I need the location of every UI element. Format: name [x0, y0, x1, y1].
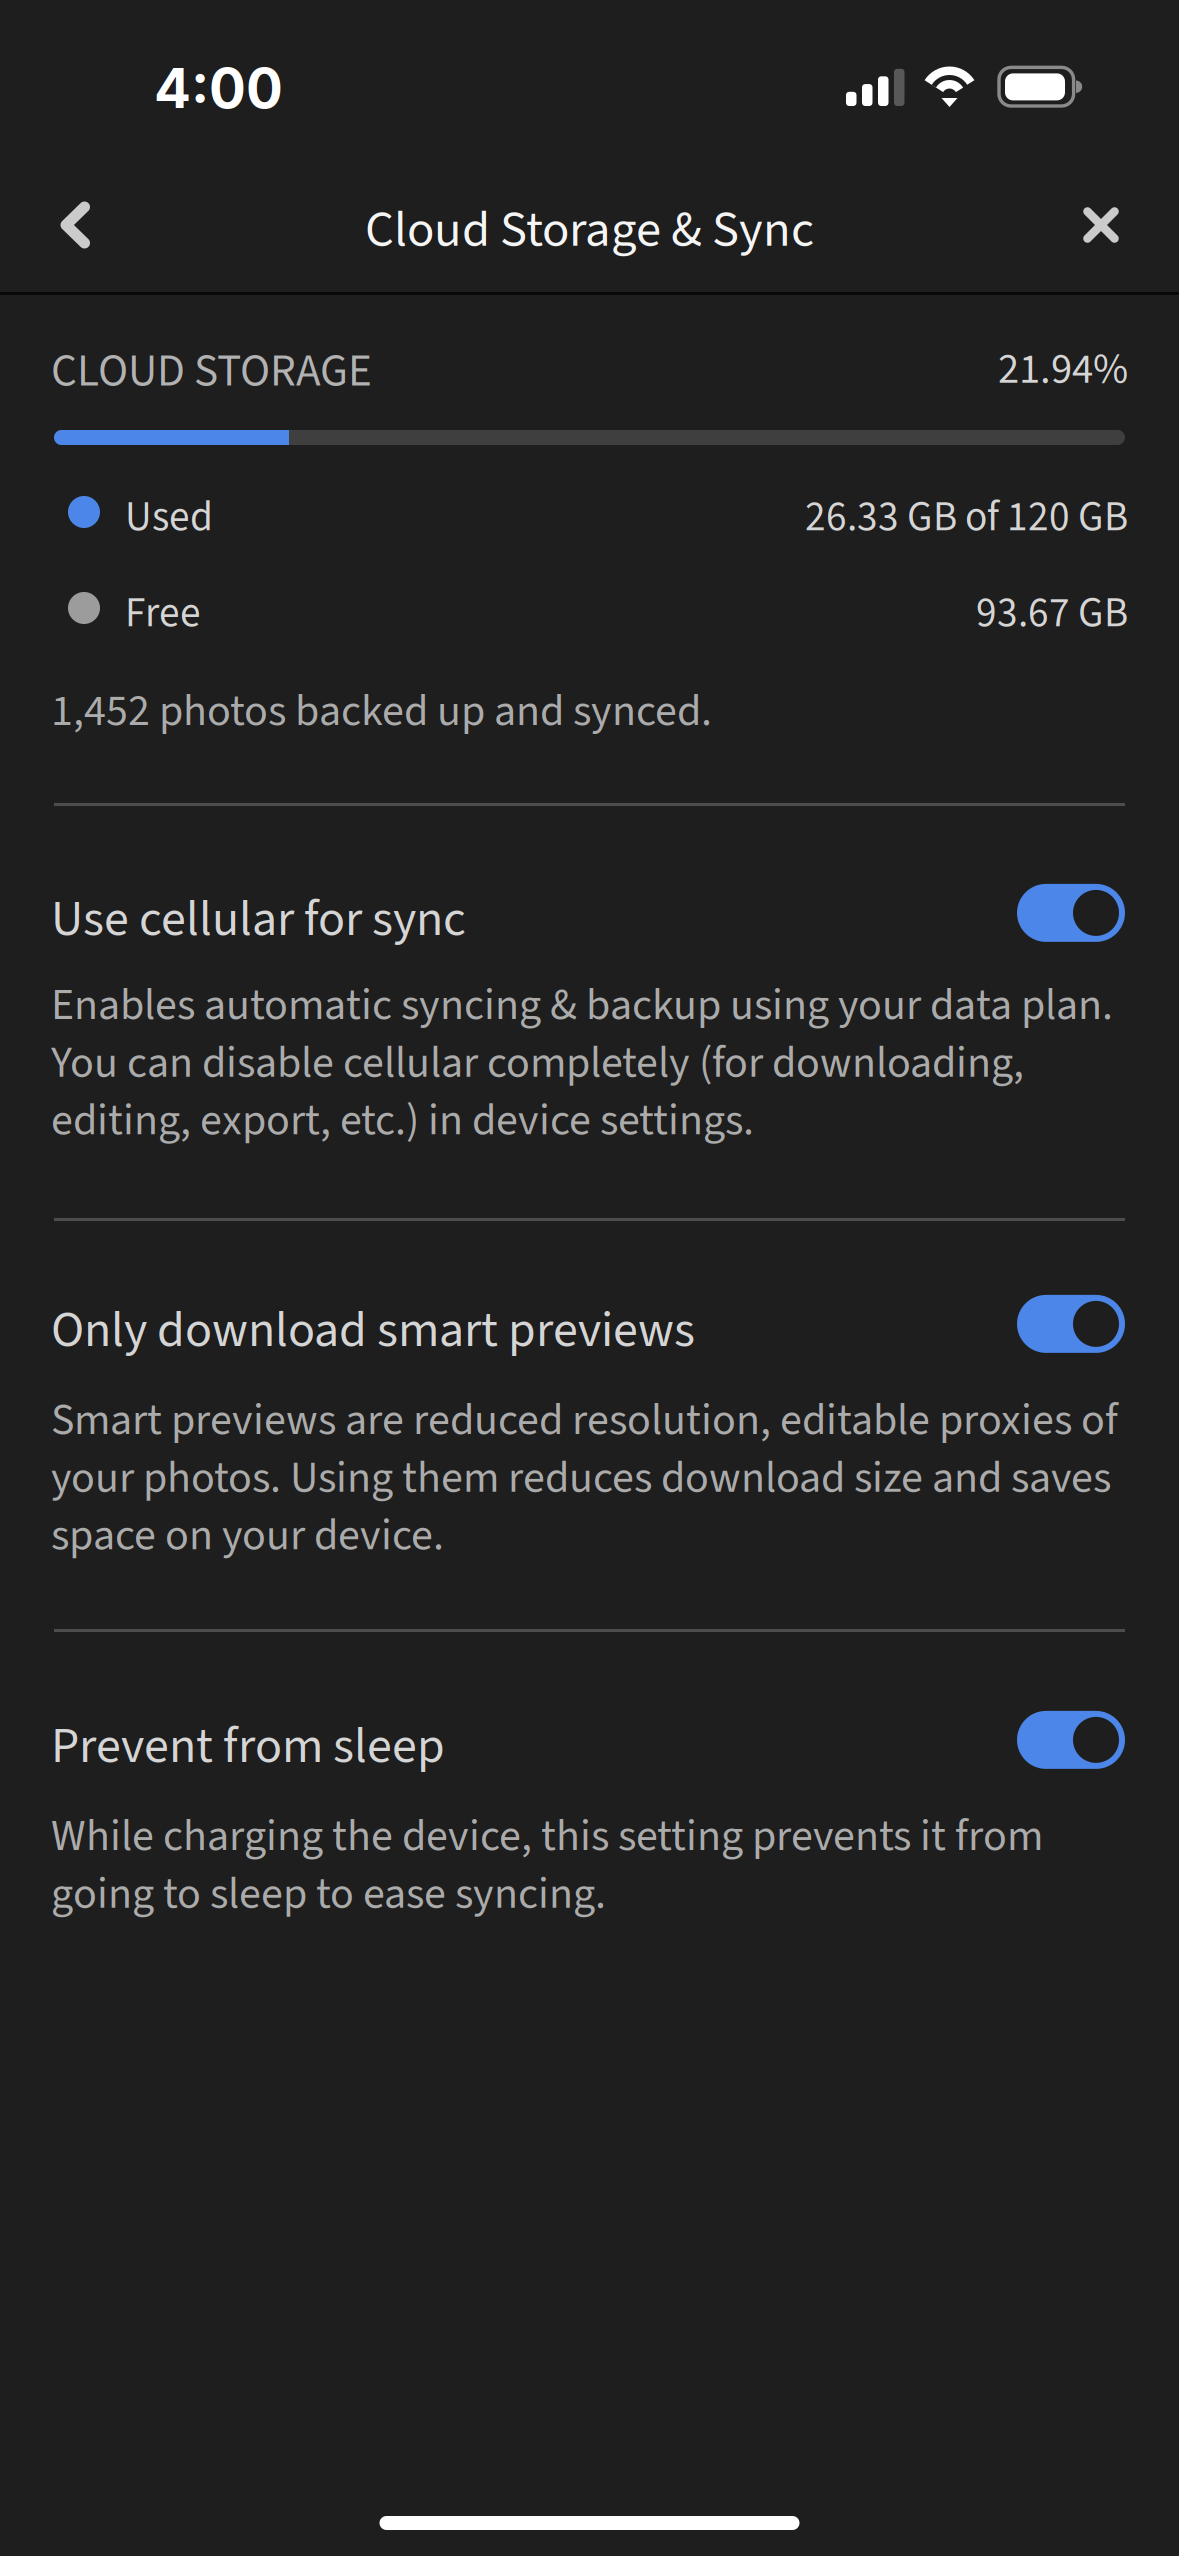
staticText: Prevent from sleep — [51, 1711, 445, 1782]
staticText: 26.33 GB of 120 GB — [805, 488, 1128, 547]
staticText: space on your device. — [51, 1504, 444, 1567]
staticText: going to sleep to ease syncing. — [51, 1863, 606, 1925]
staticText: Used — [125, 488, 213, 547]
staticText: Use cellular for sync — [51, 884, 466, 955]
staticText: While charging the device, this setting … — [51, 1805, 1043, 1868]
staticText: Smart previews are reduced resolution, e… — [51, 1389, 1118, 1452]
button[interactable]: Prevent from sleep — [0, 1711, 1179, 1782]
staticText: 1,452 photos backed up and synced. — [51, 680, 712, 743]
button[interactable]: Use cellular for sync — [0, 884, 1179, 955]
staticText: your photos. Using them reduces download… — [51, 1447, 1111, 1509]
staticText: Enables automatic syncing & backup using… — [51, 974, 1113, 1037]
staticText: 21.94% — [998, 339, 1128, 400]
staticText: editing, export, etc.) in device setting… — [51, 1089, 754, 1152]
staticText: 4:00 — [154, 55, 283, 121]
button[interactable]: Only download smart previews — [0, 1295, 1179, 1366]
button[interactable]: Back — [10, 167, 126, 283]
staticText: Cloud Storage & Sync — [365, 194, 814, 266]
button[interactable]: Close — [1043, 167, 1159, 283]
staticText: 93.67 GB — [976, 584, 1128, 643]
staticText: You can disable cellular completely (for… — [51, 1032, 1024, 1094]
staticText: Only download smart previews — [51, 1295, 695, 1366]
staticText: Free — [125, 584, 201, 643]
staticText: CLOUD STORAGE — [51, 339, 372, 404]
